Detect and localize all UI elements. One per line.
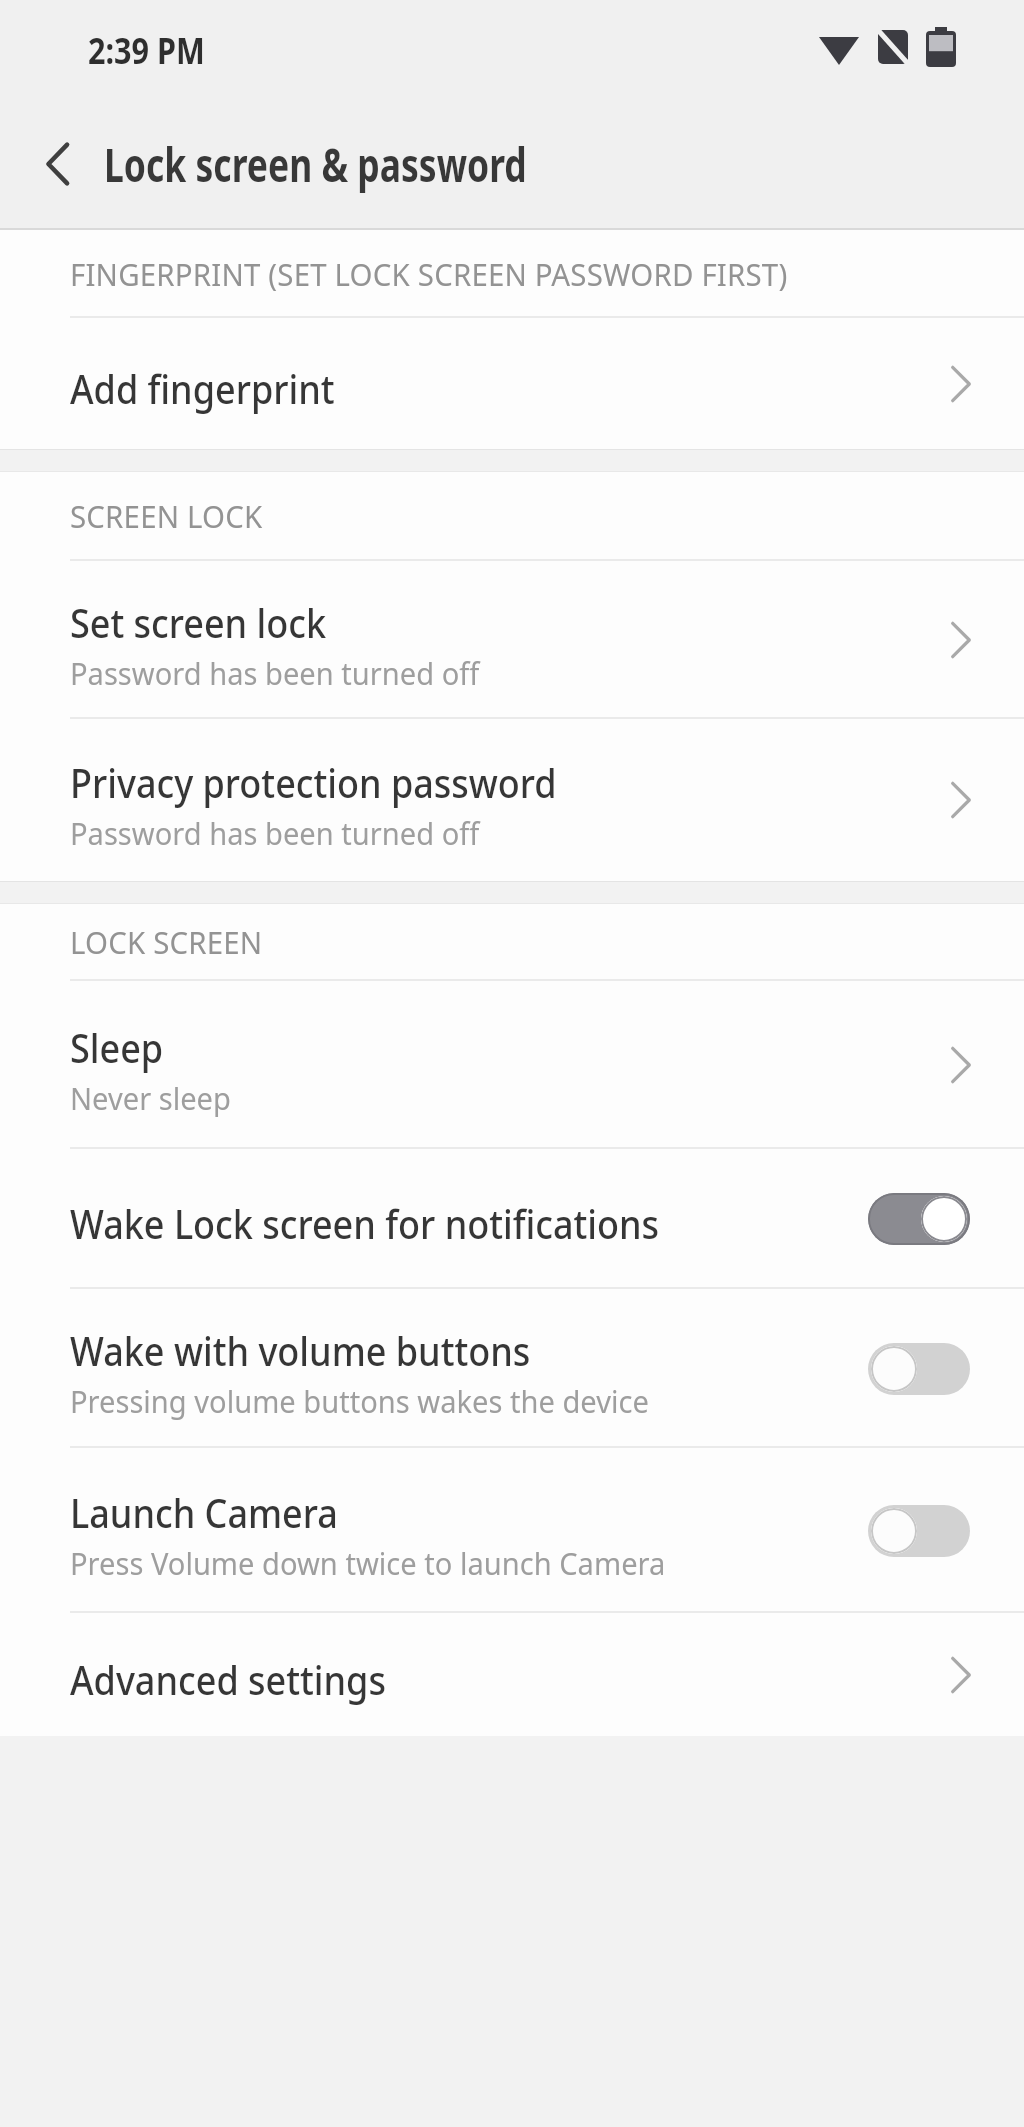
- staticText: LOCK SCREEN: [70, 922, 263, 963]
- staticText: Lock screen & password: [104, 132, 527, 196]
- staticText: Wake with volume buttons: [70, 1323, 531, 1377]
- button[interactable]: [36, 142, 80, 186]
- staticText: Password has been turned off: [70, 813, 479, 854]
- staticText: Set screen lock: [70, 595, 326, 649]
- button[interactable]: Wake with volume buttons: [0, 1289, 1024, 1448]
- staticText: 2:39 PM: [88, 26, 205, 75]
- staticText: Press Volume down twice to launch Camera: [70, 1543, 666, 1584]
- staticText: Never sleep: [70, 1078, 231, 1119]
- staticText: Advanced settings: [70, 1652, 386, 1706]
- staticText: Add fingerprint: [70, 361, 335, 415]
- staticText: SCREEN LOCK: [70, 496, 263, 537]
- button[interactable]: Add fingerprint: [0, 318, 1024, 449]
- staticText: Password has been turned off: [70, 653, 479, 694]
- button[interactable]: Set screen lock: [0, 561, 1024, 719]
- button[interactable]: Privacy protection password: [0, 719, 1024, 881]
- staticText: Wake Lock screen for notifications: [70, 1196, 659, 1250]
- staticText: Pressing volume buttons wakes the device: [70, 1381, 649, 1422]
- button[interactable]: [868, 1505, 970, 1557]
- button[interactable]: Launch Camera: [0, 1448, 1024, 1613]
- button[interactable]: [868, 1193, 970, 1245]
- button[interactable]: Sleep: [0, 981, 1024, 1149]
- button[interactable]: [868, 1343, 970, 1395]
- button[interactable]: Advanced settings: [0, 1613, 1024, 1736]
- staticText: Sleep: [70, 1020, 164, 1074]
- staticText: Launch Camera: [70, 1485, 338, 1539]
- staticText: FINGERPRINT (SET LOCK SCREEN PASSWORD FI…: [70, 254, 788, 295]
- button[interactable]: Wake Lock screen for notifications: [0, 1149, 1024, 1289]
- staticText: Privacy protection password: [70, 755, 557, 809]
